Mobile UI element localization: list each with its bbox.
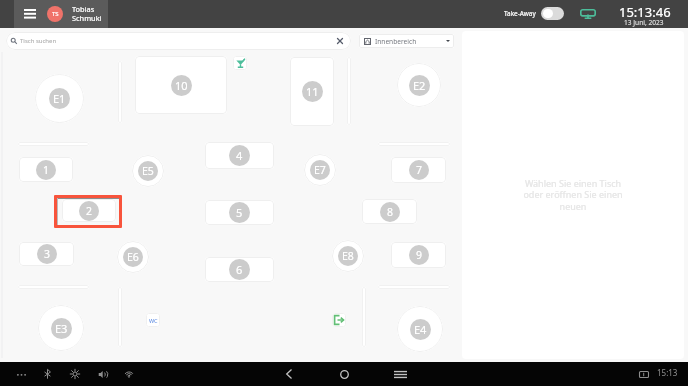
button[interactable]: E3 (38, 305, 84, 351)
staticText: 5 (236, 205, 243, 220)
staticText: E5 (142, 164, 154, 178)
staticText: E8 (342, 249, 354, 263)
button[interactable]: Volume (91, 363, 113, 385)
button[interactable]: 1 (19, 157, 73, 182)
staticText: E7 (314, 163, 326, 177)
button[interactable]: Display (578, 6, 598, 22)
button[interactable]: Brightness (64, 363, 86, 385)
staticText: 13 Juni, 2023 (624, 18, 664, 27)
button[interactable]: E1 (35, 74, 84, 123)
staticText: Take-Away (504, 9, 536, 18)
button[interactable]: E7 (304, 154, 336, 186)
button[interactable]: Menu (18, 2, 42, 26)
staticText: Tisch suchen (20, 37, 57, 45)
button[interactable]: Innenbereich (359, 34, 454, 48)
button[interactable]: 9 (391, 242, 446, 268)
button[interactable]: E5 (132, 155, 164, 187)
staticText: 11 (306, 84, 319, 99)
button[interactable]: Home (333, 363, 355, 385)
button[interactable]: 6 (205, 257, 274, 282)
staticText: 10 (175, 78, 188, 93)
staticText: 7 (416, 163, 423, 177)
staticText: 8 (387, 205, 394, 219)
button[interactable]: Bluetooth (36, 363, 58, 385)
button[interactable]: E8 (332, 240, 364, 272)
staticText: Innenbereich (375, 37, 417, 46)
staticText: E2 (413, 78, 426, 93)
button[interactable]: Clear (334, 35, 346, 47)
button[interactable]: 7 (391, 157, 446, 183)
staticText: E1 (53, 91, 66, 106)
button[interactable]: 8 (362, 199, 417, 224)
staticText: 2 (86, 204, 93, 218)
button[interactable]: 3 (19, 242, 74, 266)
staticText: E6 (127, 250, 139, 264)
button[interactable]: More (10, 363, 32, 385)
staticText: 4 (236, 148, 243, 163)
button[interactable]: Exit (332, 313, 346, 327)
button[interactable]: 10 (135, 56, 227, 114)
button[interactable]: Recents (389, 363, 411, 385)
button[interactable]: 4 (205, 142, 274, 169)
button[interactable]: WiFi (118, 363, 140, 385)
staticText: Wählen Sie einen Tisch oder eröffnen Sie… (523, 177, 623, 213)
staticText: WC (149, 317, 158, 324)
staticText: 15:13 (657, 367, 678, 378)
staticText: E3 (55, 321, 68, 336)
staticText: 9 (416, 248, 423, 262)
button[interactable]: 11 (290, 57, 334, 126)
staticText: Tobias Schmuki (72, 4, 102, 23)
staticText: 15:13:46 (619, 3, 671, 21)
staticText: 1 (43, 163, 50, 177)
staticText: 3 (44, 247, 51, 261)
button[interactable]: Menu (14, 0, 108, 28)
button[interactable]: 5 (205, 200, 274, 225)
button[interactable]: E4 (397, 306, 443, 352)
button[interactable]: Bar (233, 56, 247, 70)
button[interactable]: E6 (117, 241, 149, 273)
staticText: TS (52, 10, 59, 18)
button[interactable]: WC (146, 313, 160, 327)
button[interactable]: 2 (62, 199, 116, 222)
staticText: E4 (414, 322, 427, 337)
button[interactable]: E2 (397, 63, 441, 107)
button[interactable]: Take-Away toggle (541, 7, 564, 20)
button[interactable]: Back (278, 363, 300, 385)
staticText: 6 (236, 262, 243, 277)
button[interactable]: Tisch suchen (6, 32, 351, 50)
